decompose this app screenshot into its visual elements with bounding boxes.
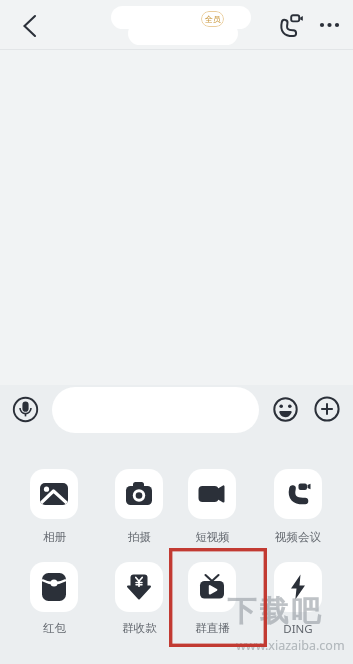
staticText: 群直播 (195, 621, 230, 635)
button[interactable]: 全员 (201, 11, 224, 27)
staticText: 视频会议 (275, 530, 321, 544)
staticText: DING (283, 621, 313, 637)
staticText: 全员 (205, 14, 221, 24)
button[interactable] (274, 562, 322, 612)
button[interactable] (273, 397, 298, 422)
staticText: 相册 (43, 530, 66, 544)
button[interactable] (12, 396, 39, 423)
staticText: 短视频 (195, 530, 230, 544)
staticText: 下载吧 (226, 593, 322, 630)
button[interactable] (115, 562, 163, 612)
staticText: 拍摄 (128, 530, 151, 544)
button[interactable] (115, 469, 163, 519)
button[interactable] (315, 15, 345, 35)
button[interactable] (188, 469, 236, 519)
button[interactable] (12, 8, 48, 44)
button[interactable] (52, 387, 259, 433)
button[interactable] (30, 469, 78, 519)
button[interactable] (30, 562, 78, 612)
button[interactable] (278, 12, 304, 38)
staticText: 红包 (43, 621, 66, 635)
button[interactable] (314, 396, 340, 422)
button[interactable] (188, 562, 236, 612)
staticText: 群收款 (122, 621, 157, 635)
button[interactable] (274, 469, 322, 519)
staticText: www.xiazaiba.com (236, 637, 345, 654)
